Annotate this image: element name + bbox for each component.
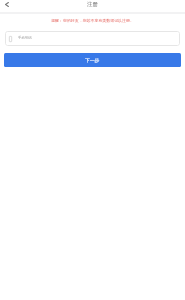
staticText: 注册 <box>87 1 98 8</box>
button[interactable]: Back <box>0 0 13 12</box>
staticText: 手机号码 <box>18 36 32 40</box>
staticText: 下一步 <box>85 57 100 63</box>
button[interactable]: Phone number input <box>5 31 180 46</box>
button[interactable]: 下一步 <box>4 53 181 67</box>
staticText: 提醒：您的好友，您若不享有类数据记以注册。 <box>0 18 185 23</box>
